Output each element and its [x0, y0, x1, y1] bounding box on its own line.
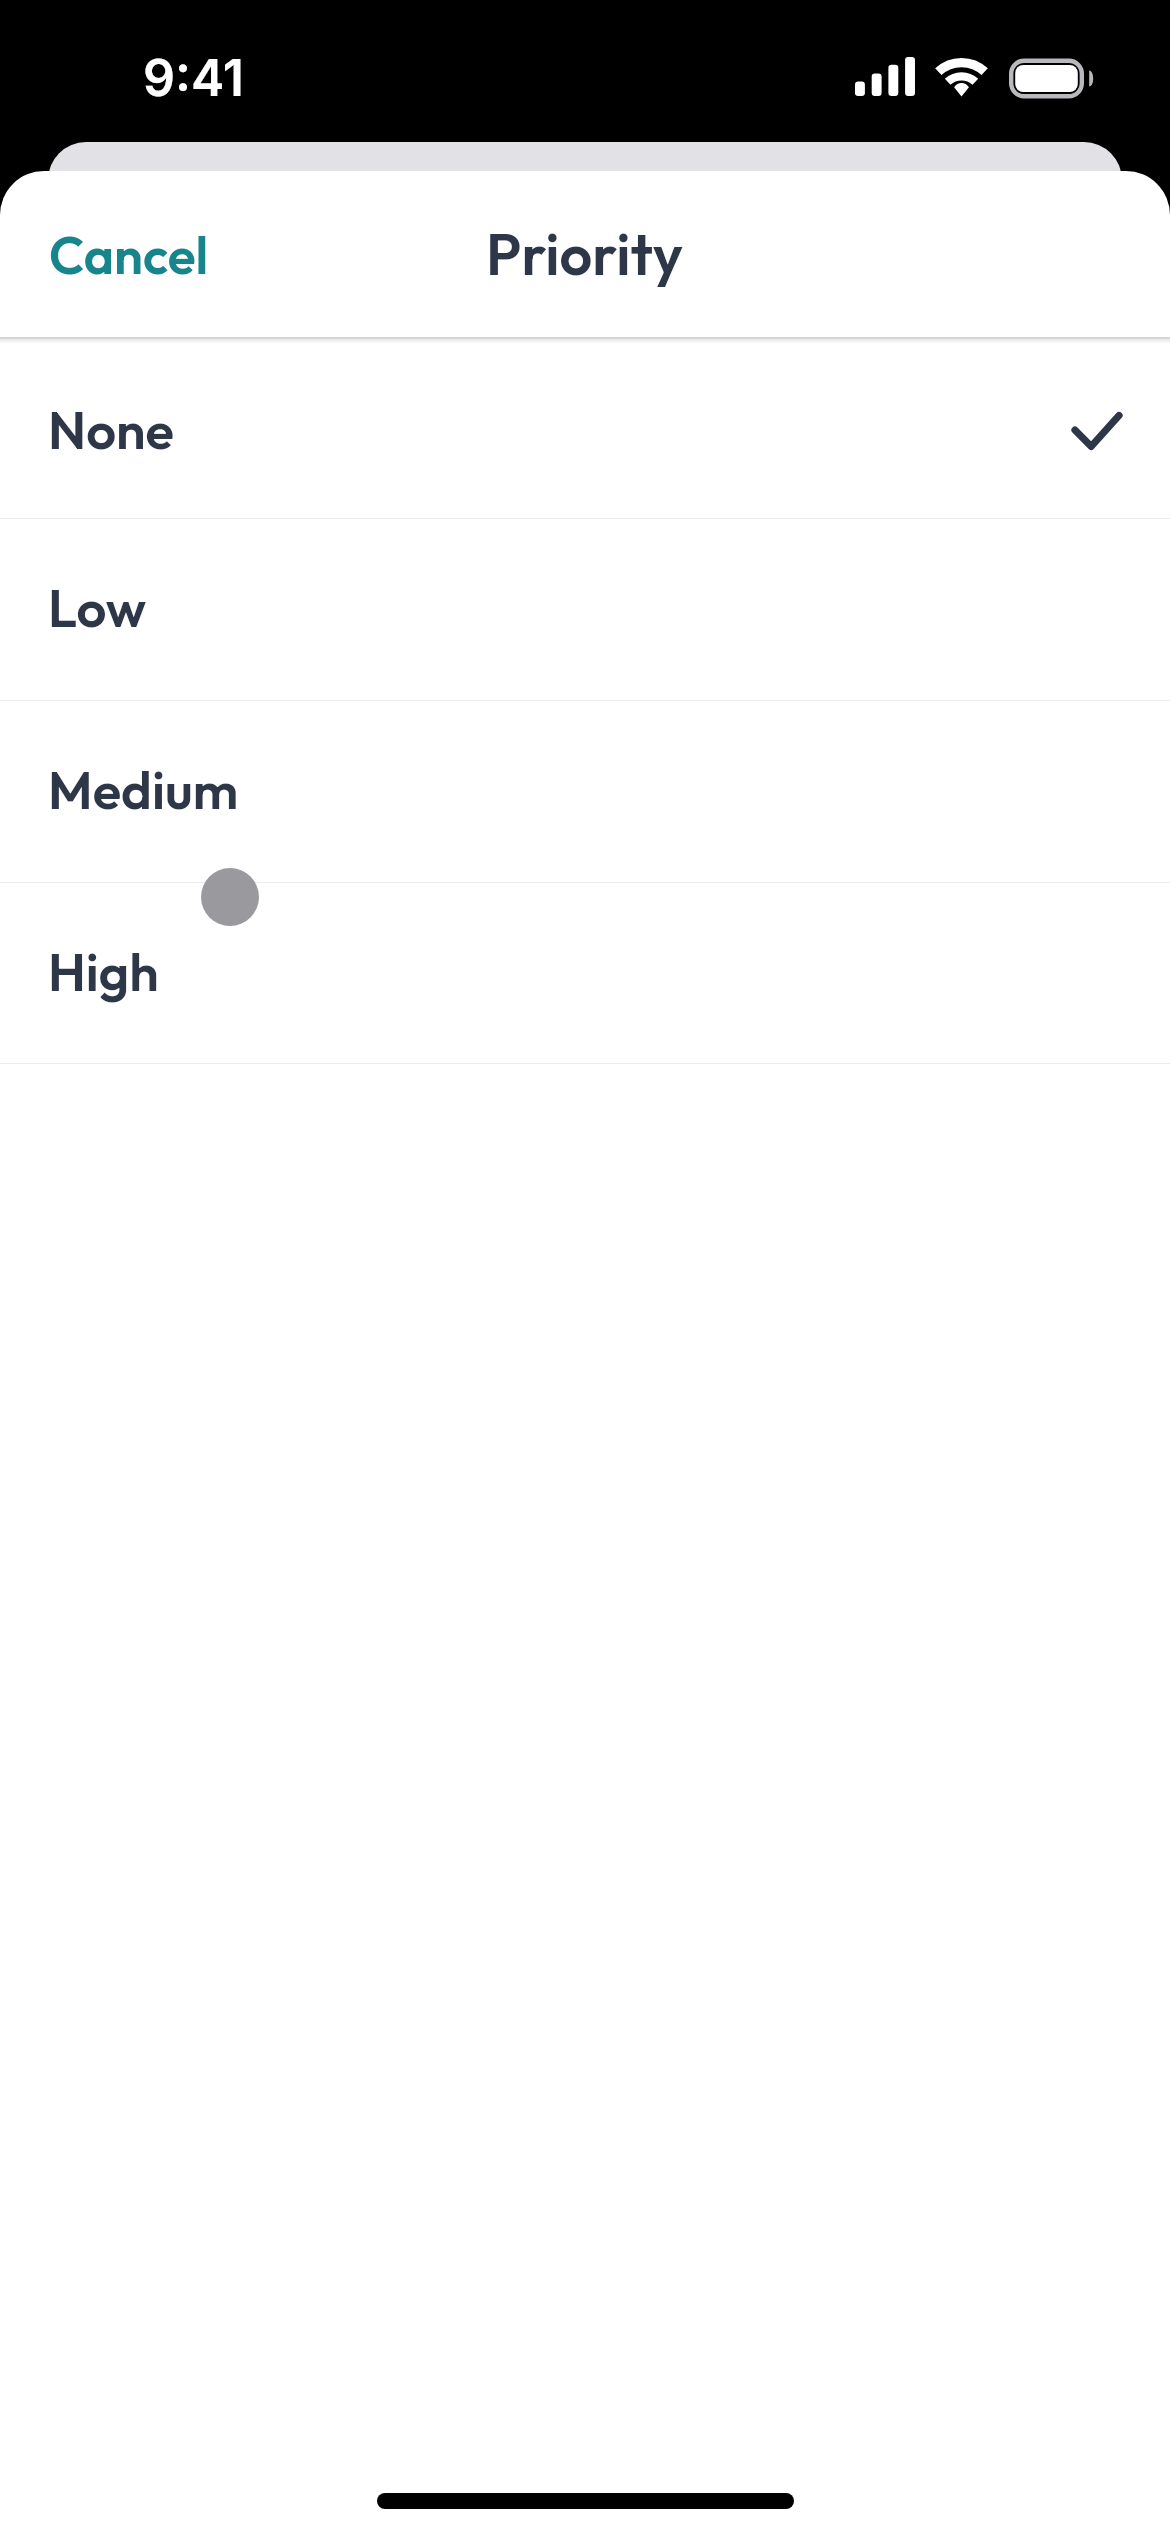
button[interactable]: High — [0, 883, 1170, 1064]
staticText: Medium — [48, 756, 239, 822]
button[interactable]: Medium — [0, 701, 1170, 883]
staticText: None — [48, 396, 174, 462]
staticText: Priority — [486, 217, 684, 289]
button[interactable]: Cancel — [0, 196, 253, 313]
other: Wi-Fi — [930, 50, 994, 100]
button[interactable]: None — [0, 339, 1170, 519]
other: Selected — [1074, 406, 1120, 452]
button[interactable]: Low — [0, 519, 1170, 701]
staticText: Low — [48, 574, 147, 640]
other: Battery — [1008, 57, 1094, 101]
staticText: 9:41 — [143, 48, 244, 108]
staticText: Cancel — [49, 222, 209, 287]
other: Cellular signal — [855, 57, 915, 96]
staticText: High — [48, 938, 159, 1004]
